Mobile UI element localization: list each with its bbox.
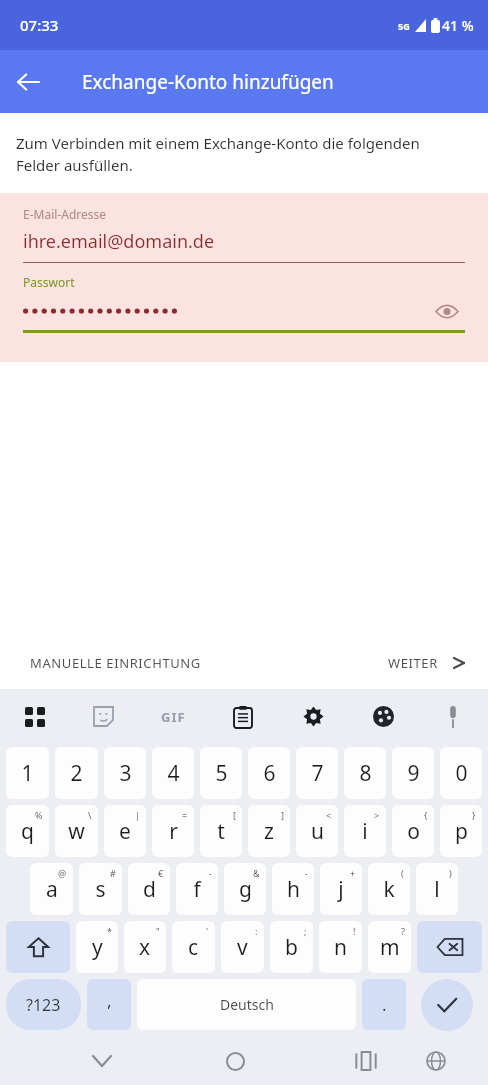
button[interactable]: g <box>224 863 266 915</box>
button[interactable]: h <box>272 863 314 915</box>
button[interactable]: MANUELLE EINRICHTUNG <box>0 644 213 682</box>
staticText: f <box>193 875 201 904</box>
button[interactable]: , <box>87 979 131 1030</box>
button[interactable]: u <box>296 805 338 857</box>
button[interactable]: . <box>362 979 406 1030</box>
button[interactable]: q <box>6 805 49 857</box>
staticText: 2 <box>70 759 83 788</box>
button[interactable]: m <box>368 921 411 973</box>
button[interactable]: 5 <box>200 747 242 799</box>
button[interactable]: Backspace <box>417 921 482 973</box>
staticText: t <box>217 817 225 846</box>
button[interactable]: b <box>270 921 313 973</box>
button[interactable]: i <box>344 805 386 857</box>
button[interactable]: y <box>76 921 118 973</box>
staticText: : <box>255 925 258 937</box>
staticText: { <box>424 809 428 821</box>
staticText: z <box>264 817 274 846</box>
staticText: 7 <box>311 759 324 788</box>
button[interactable]: Stickers <box>69 689 138 744</box>
staticText: 6 <box>263 759 276 788</box>
button[interactable]: v <box>221 921 264 973</box>
button[interactable]: Recent apps <box>342 1037 390 1085</box>
button[interactable]: Theme <box>348 689 418 744</box>
button[interactable]: Show password <box>432 298 462 324</box>
button[interactable]: ihre.email@domain.de <box>0 229 488 254</box>
staticText: ?123 <box>26 994 61 1016</box>
button[interactable]: o <box>392 805 434 857</box>
staticText: < <box>326 809 332 821</box>
button[interactable]: 2 <box>55 747 98 799</box>
staticText: b <box>285 933 298 962</box>
staticText: % <box>35 809 43 821</box>
staticText: g <box>239 875 252 904</box>
button[interactable]: w <box>55 805 98 857</box>
button[interactable]: Home <box>211 1037 259 1085</box>
staticText: e <box>119 817 131 846</box>
button[interactable]: WEITER <box>376 644 488 682</box>
staticText: } <box>472 809 476 821</box>
staticText: | <box>135 809 140 821</box>
button[interactable]: 9 <box>392 747 434 799</box>
staticText: c <box>188 933 199 962</box>
staticText: = <box>182 809 188 821</box>
button[interactable]: c <box>172 921 215 973</box>
staticText: ihre.email@domain.de <box>23 229 215 254</box>
button[interactable]: n <box>319 921 362 973</box>
button[interactable]: ?123 <box>6 979 81 1030</box>
staticText: x <box>139 933 151 962</box>
button[interactable]: l <box>416 863 458 915</box>
button[interactable]: Clipboard <box>208 689 278 744</box>
staticText: i <box>362 817 368 846</box>
button[interactable]: d <box>128 863 170 915</box>
button[interactable]: 4 <box>152 747 194 799</box>
button[interactable]: Enter <box>421 979 473 1031</box>
button[interactable]: Back <box>0 54 56 110</box>
staticText: 1 <box>21 759 34 788</box>
button[interactable]: Hide keyboard <box>78 1037 126 1085</box>
staticText: Zum Verbinden mit einem Exchange-Konto d… <box>16 133 454 176</box>
staticText: \ <box>88 809 92 821</box>
button[interactable]: 8 <box>344 747 386 799</box>
button[interactable]: s <box>79 863 122 915</box>
button[interactable]: t <box>200 805 242 857</box>
button[interactable]: Change language <box>412 1037 460 1085</box>
staticText: d <box>143 875 156 904</box>
button[interactable]: Show password <box>0 298 488 324</box>
button[interactable]: r <box>152 805 194 857</box>
staticText: 0 <box>455 759 468 788</box>
staticText: w <box>68 817 85 846</box>
button[interactable]: x <box>124 921 166 973</box>
button[interactable]: p <box>440 805 482 857</box>
button[interactable]: e <box>104 805 146 857</box>
staticText: Deutsch <box>220 995 274 1014</box>
staticText: k <box>383 875 395 904</box>
button[interactable]: f <box>176 863 218 915</box>
button[interactable]: 1 <box>6 747 49 799</box>
button[interactable]: 7 <box>296 747 338 799</box>
staticText: s <box>95 875 106 904</box>
button[interactable]: z <box>248 805 290 857</box>
staticText: ' <box>206 925 209 937</box>
staticText: l <box>434 875 440 904</box>
staticText: " <box>156 925 160 937</box>
staticText: q <box>21 817 34 846</box>
button[interactable]: Voice input <box>418 689 488 744</box>
button[interactable]: Deutsch <box>137 979 356 1030</box>
button[interactable]: j <box>320 863 362 915</box>
button[interactable]: Settings <box>278 689 348 744</box>
staticText: ) <box>449 867 452 879</box>
button[interactable]: 6 <box>248 747 290 799</box>
button[interactable]: 0 <box>440 747 482 799</box>
button[interactable]: k <box>368 863 410 915</box>
button[interactable]: 3 <box>104 747 146 799</box>
staticText: y <box>92 933 103 962</box>
staticText: Exchange-Konto hinzufügen <box>82 69 334 95</box>
button[interactable]: Apps <box>0 689 69 744</box>
staticText: GIF <box>161 708 186 726</box>
button[interactable]: GIF <box>138 689 208 744</box>
staticText: 41 % <box>442 16 474 35</box>
button[interactable]: a <box>30 863 73 915</box>
button[interactable]: Shift <box>6 921 70 973</box>
staticText: ( <box>401 867 404 879</box>
